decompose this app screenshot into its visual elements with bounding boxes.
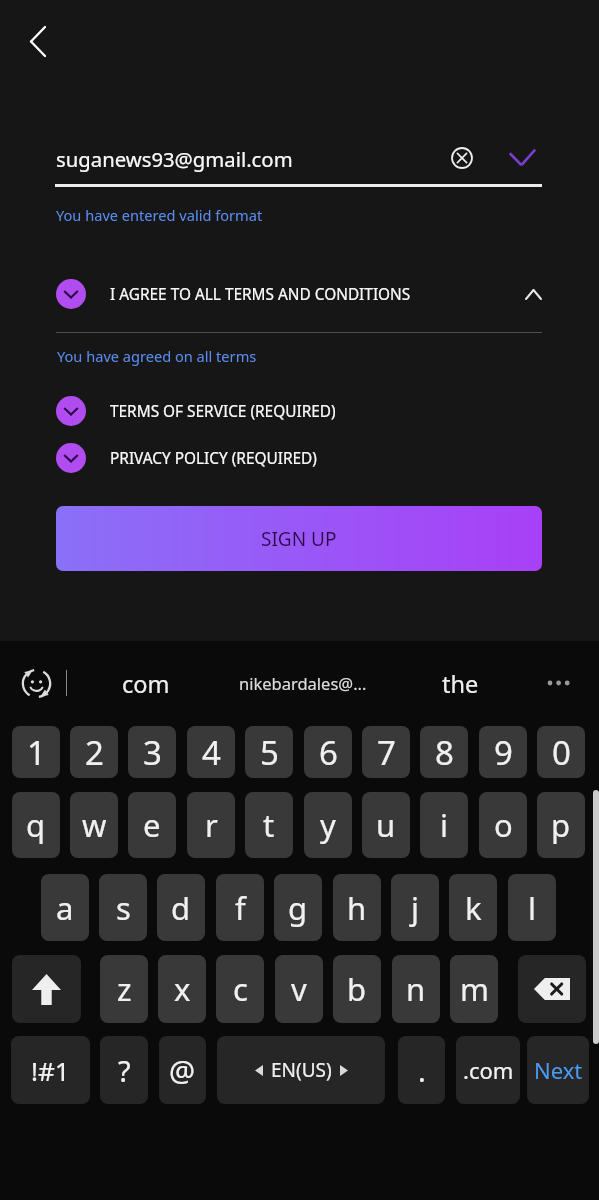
button[interactable]: ?: [100, 1036, 148, 1104]
button[interactable]: k: [449, 874, 497, 941]
button[interactable]: a: [41, 874, 89, 941]
button[interactable]: v: [275, 955, 323, 1023]
button[interactable]: 7: [362, 726, 410, 778]
staticText: You have agreed on all terms: [57, 346, 257, 366]
button[interactable]: TERMS OF SERVICE (REQUIRED): [56, 396, 486, 426]
button[interactable]: o: [479, 792, 527, 858]
button[interactable]: q: [12, 792, 60, 858]
staticText: .: [418, 1051, 426, 1090]
button[interactable]: More options: [540, 669, 578, 697]
staticText: a: [56, 887, 74, 929]
button[interactable]: Clear: [444, 140, 480, 176]
button[interactable]: u: [362, 792, 410, 858]
staticText: 7: [377, 730, 396, 775]
button[interactable]: j: [391, 874, 439, 941]
button[interactable]: l: [508, 874, 556, 941]
staticText: suganews93@gmail.com: [56, 145, 293, 173]
staticText: 2: [85, 730, 104, 775]
staticText: ?: [118, 1051, 131, 1090]
button[interactable]: 0: [537, 726, 585, 778]
button[interactable]: g: [274, 874, 322, 941]
staticText: 0: [552, 730, 571, 775]
staticText: 3: [143, 730, 162, 775]
staticText: TERMS OF SERVICE (REQUIRED): [110, 401, 336, 422]
staticText: EN(US): [271, 1057, 332, 1083]
staticText: s: [116, 887, 131, 929]
button[interactable]: com: [122, 668, 170, 698]
button[interactable]: 5: [245, 726, 293, 778]
staticText: e: [143, 804, 161, 846]
staticText: z: [117, 968, 132, 1010]
button[interactable]: .com: [456, 1036, 520, 1104]
staticText: You have entered valid format: [56, 205, 263, 225]
staticText: com: [122, 668, 170, 698]
button[interactable]: !#1: [11, 1036, 90, 1104]
staticText: n: [406, 968, 426, 1010]
staticText: g: [288, 887, 308, 929]
button[interactable]: Shift: [12, 955, 81, 1023]
button[interactable]: Back: [14, 17, 62, 65]
button[interactable]: .: [398, 1036, 445, 1104]
button[interactable]: x: [158, 955, 206, 1023]
staticText: @: [169, 1051, 196, 1090]
button[interactable]: t: [245, 792, 293, 858]
button[interactable]: d: [157, 874, 205, 941]
staticText: PRIVACY POLICY (REQUIRED): [110, 448, 317, 469]
button[interactable]: m: [450, 955, 498, 1023]
button[interactable]: 2: [70, 726, 118, 778]
staticText: .com: [463, 1055, 514, 1085]
button[interactable]: f: [216, 874, 264, 941]
staticText: f: [235, 887, 246, 929]
button[interactable]: b: [333, 955, 381, 1023]
staticText: o: [494, 804, 513, 846]
staticText: w: [82, 804, 107, 846]
button[interactable]: Backspace: [518, 955, 586, 1023]
staticText: I AGREE TO ALL TERMS AND CONDITIONS: [110, 284, 411, 305]
staticText: p: [551, 804, 571, 846]
button[interactable]: 4: [187, 726, 235, 778]
staticText: b: [347, 968, 367, 1010]
staticText: the: [442, 668, 479, 698]
button[interactable]: the: [442, 668, 479, 698]
button[interactable]: w: [70, 792, 118, 858]
button[interactable]: z: [100, 955, 148, 1023]
staticText: 5: [260, 730, 279, 775]
staticText: h: [347, 887, 367, 929]
button[interactable]: @: [159, 1036, 206, 1104]
staticText: l: [528, 887, 536, 929]
staticText: 8: [435, 730, 454, 775]
button[interactable]: Next: [527, 1036, 589, 1104]
button[interactable]: I AGREE TO ALL TERMS AND CONDITIONS: [56, 273, 542, 315]
staticText: t: [263, 804, 275, 846]
button[interactable]: Emoji and sticker: [21, 668, 52, 699]
button[interactable]: 3: [128, 726, 176, 778]
staticText: r: [205, 804, 218, 846]
staticText: d: [171, 887, 191, 929]
button[interactable]: y: [304, 792, 352, 858]
button[interactable]: r: [187, 792, 235, 858]
staticText: v: [291, 968, 307, 1010]
button[interactable]: Valid email: [509, 144, 536, 170]
button[interactable]: SIGN UP: [56, 506, 542, 571]
staticText: k: [465, 887, 482, 929]
button[interactable]: 8: [420, 726, 468, 778]
button[interactable]: nikebardales@...: [239, 668, 367, 698]
staticText: j: [411, 887, 419, 929]
staticText: 4: [202, 730, 221, 775]
button[interactable]: s: [99, 874, 147, 941]
button[interactable]: c: [216, 955, 264, 1023]
staticText: 1: [27, 730, 46, 775]
button[interactable]: PRIVACY POLICY (REQUIRED): [56, 443, 486, 473]
button[interactable]: 6: [304, 726, 352, 778]
button[interactable]: i: [420, 792, 468, 858]
button[interactable]: n: [392, 955, 440, 1023]
staticText: !#1: [31, 1053, 70, 1088]
button[interactable]: EN(US): [217, 1036, 385, 1104]
button[interactable]: 1: [12, 726, 60, 778]
button[interactable]: p: [537, 792, 585, 858]
button[interactable]: e: [128, 792, 176, 858]
button[interactable]: h: [333, 874, 381, 941]
button[interactable]: 9: [479, 726, 527, 778]
staticText: nikebardales@...: [239, 672, 367, 694]
staticText: c: [233, 968, 248, 1010]
